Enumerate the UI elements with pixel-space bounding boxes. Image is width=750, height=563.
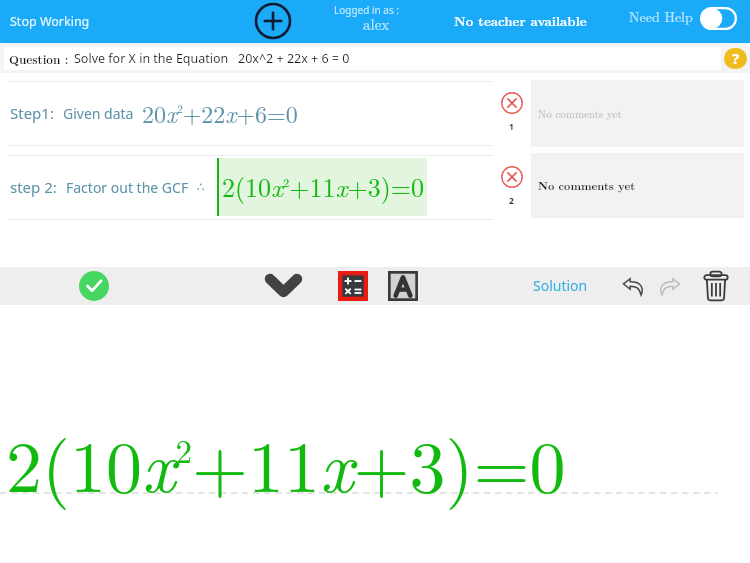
staticText: alex bbox=[363, 13, 390, 34]
staticText: Step1: bbox=[10, 103, 54, 123]
staticText: ? bbox=[732, 48, 740, 68]
staticText: 2 bbox=[509, 195, 514, 207]
button[interactable]: Logged in as : bbox=[312, 0, 422, 43]
staticText: Factor out the GCF bbox=[66, 178, 189, 197]
staticText: 1 bbox=[509, 121, 514, 133]
button[interactable]: No comments yet bbox=[531, 153, 744, 218]
button[interactable]: Add new step bbox=[254, 2, 292, 40]
button[interactable]: Text tool bbox=[388, 271, 418, 301]
button[interactable]: Question : bbox=[4, 47, 721, 70]
staticText: 2(10x2+11x+3)=0 bbox=[222, 168, 425, 205]
button[interactable]: Delete step 2 bbox=[496, 166, 527, 212]
staticText: Solve for X in the Equation 20x^2 + 22x … bbox=[74, 50, 350, 67]
staticText: Logged in as : bbox=[334, 3, 400, 17]
button[interactable]: No comments yet bbox=[531, 80, 744, 147]
button[interactable]: Stop Working bbox=[0, 6, 100, 37]
staticText: 20x2+22x+6=0 bbox=[142, 96, 298, 130]
staticText: No comments yet bbox=[538, 106, 622, 122]
button[interactable]: Math keyboard bbox=[338, 271, 368, 301]
staticText: ∴ bbox=[197, 180, 205, 194]
staticText: Given data bbox=[63, 104, 134, 123]
staticText: step 2: bbox=[10, 177, 57, 197]
staticText: No teacher available bbox=[454, 11, 587, 30]
button[interactable]: Undo bbox=[620, 273, 647, 299]
staticText: Need Help bbox=[629, 6, 693, 26]
staticText: No comments yet bbox=[538, 178, 636, 194]
button[interactable]: Redo bbox=[656, 273, 683, 299]
button[interactable]: Delete all bbox=[702, 270, 730, 302]
staticText: Question : bbox=[9, 51, 69, 67]
button[interactable]: Solution bbox=[528, 273, 593, 298]
staticText: 2(10x2+11x+3)=0 bbox=[6, 411, 566, 513]
button[interactable]: Need help toggle bbox=[700, 7, 737, 30]
button[interactable]: Step1: bbox=[0, 82, 494, 144]
button[interactable]: Submit step bbox=[79, 271, 109, 301]
button[interactable]: Collapse bbox=[262, 271, 305, 301]
staticText: Solution bbox=[533, 276, 588, 295]
button[interactable]: Need Help bbox=[624, 0, 698, 33]
button[interactable]: step 2: bbox=[0, 156, 494, 217]
button[interactable]: Help bbox=[724, 48, 747, 69]
button[interactable]: Delete step 1 bbox=[496, 92, 527, 138]
